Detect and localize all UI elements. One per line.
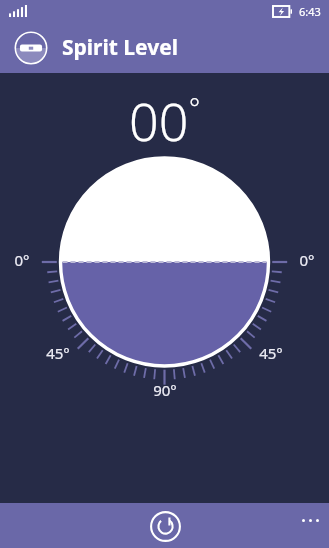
staticText: 0°: [14, 250, 30, 270]
staticText: 45°: [46, 343, 70, 363]
button[interactable]: Reset calibration: [145, 506, 185, 546]
staticText: 6:43: [299, 4, 321, 19]
staticText: 45°: [259, 343, 283, 363]
staticText: Spirit Level: [62, 33, 179, 62]
staticText: 90°: [153, 380, 177, 400]
staticText: °: [189, 89, 201, 124]
button[interactable]: More options: [291, 509, 329, 531]
staticText: 0°: [299, 250, 315, 270]
button[interactable]: Spirit level dial, 0 degrees: [0, 156, 329, 503]
other: Signal strength: [9, 5, 27, 17]
button[interactable]: Spirit Level app icon: [14, 31, 48, 65]
other: Battery charging: [273, 6, 292, 17]
staticText: 00: [129, 85, 189, 156]
